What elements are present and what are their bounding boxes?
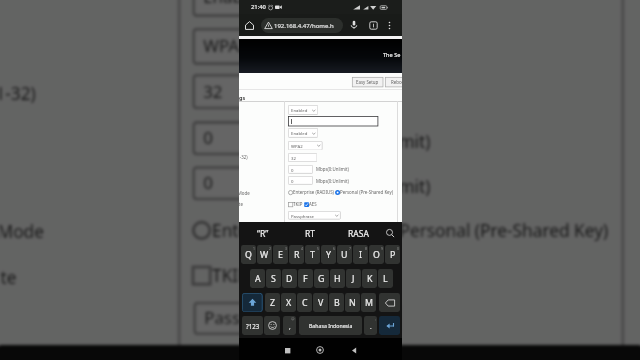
staticText: 0	[291, 178, 294, 184]
button[interactable]: Search	[383, 226, 397, 240]
button[interactable]: 0	[192, 121, 291, 155]
staticText: :	[375, 317, 376, 322]
staticText: Reboot	[391, 79, 402, 85]
button[interactable]: 1	[241, 245, 256, 264]
staticText: C	[302, 297, 308, 309]
staticText: Enterprise (RADIUS)	[293, 189, 334, 195]
button[interactable]: 32	[192, 74, 307, 109]
button[interactable]: Voice search	[347, 18, 361, 32]
button[interactable]: ☺	[283, 316, 296, 335]
button[interactable]: WPA2	[288, 141, 323, 150]
staticText: AES	[276, 263, 306, 287]
button[interactable]: 6	[321, 245, 336, 264]
button[interactable]: ?123	[242, 316, 263, 335]
staticText: uite	[0, 265, 17, 289]
button[interactable]: Backspace	[379, 293, 400, 312]
button[interactable]: Bahasa Indonesia	[299, 316, 362, 335]
button[interactable]: B	[329, 293, 344, 312]
button[interactable]: 0	[192, 166, 291, 201]
staticText: O	[373, 249, 380, 261]
staticText: .	[370, 322, 372, 330]
button[interactable]: RASA	[336, 224, 380, 243]
button[interactable]: M	[361, 293, 376, 312]
button[interactable]: Enabled	[192, 0, 310, 17]
button[interactable]: S	[266, 269, 281, 288]
staticText: “R”	[257, 228, 269, 240]
button[interactable]: RT	[288, 224, 332, 243]
button[interactable]: 4	[289, 245, 304, 264]
button[interactable]: Passphrase	[288, 211, 341, 220]
staticText: N	[349, 297, 356, 309]
button[interactable]: H	[330, 269, 345, 288]
staticText: Enabled	[291, 107, 308, 113]
button[interactable]: Emoji	[264, 316, 280, 335]
button[interactable]: Enabled	[288, 105, 318, 115]
staticText: M	[365, 297, 373, 309]
button[interactable]: 192.168.4.47/home.h	[261, 18, 343, 33]
staticText: RASA	[348, 228, 369, 240]
button[interactable]: 2	[257, 245, 272, 264]
button[interactable]: Home	[313, 343, 327, 357]
button[interactable]: Back	[347, 343, 361, 357]
button[interactable]: F	[298, 269, 313, 288]
button[interactable]: C	[297, 293, 312, 312]
button[interactable]: Z	[265, 293, 280, 312]
button[interactable]: Enabled	[288, 128, 318, 138]
button[interactable]: Recent apps	[280, 343, 294, 357]
button[interactable]: X	[281, 293, 296, 312]
staticText: 0	[291, 167, 294, 173]
button[interactable]: Shift	[242, 293, 263, 312]
staticText: V	[318, 297, 324, 309]
staticText: Enabled	[203, 0, 268, 8]
staticText: (1-32)	[0, 82, 36, 105]
staticText: Passphrase	[204, 307, 295, 329]
staticText: 32	[203, 80, 223, 102]
button[interactable]: 8	[353, 245, 368, 264]
button[interactable]	[288, 116, 378, 126]
staticText: gs	[239, 94, 246, 101]
staticText: ,	[289, 322, 291, 330]
staticText: E	[278, 249, 283, 261]
button[interactable]: Open tabs	[366, 18, 380, 32]
button[interactable]: Reboot	[385, 77, 402, 87]
button[interactable]: Passphrase	[193, 302, 400, 335]
button[interactable]: 7	[337, 245, 352, 264]
staticText: ?123	[246, 322, 260, 330]
button[interactable]: J	[346, 269, 361, 288]
button[interactable]: K	[362, 269, 377, 288]
button[interactable]: 9	[369, 245, 384, 264]
staticText: ☺	[291, 317, 295, 321]
button[interactable]: D	[282, 269, 297, 288]
staticText: RT	[305, 228, 316, 240]
staticText: 9	[381, 246, 383, 251]
button[interactable]: :	[364, 316, 377, 335]
button[interactable]: 0	[288, 176, 313, 185]
button[interactable]: WPA2	[192, 28, 328, 65]
button[interactable]: 3	[273, 245, 288, 264]
button[interactable]: N	[345, 293, 360, 312]
button[interactable]: RT	[190, 351, 363, 360]
staticText: WPA2	[291, 143, 303, 149]
button[interactable]: Home page	[242, 18, 256, 32]
button[interactable]: V	[313, 293, 328, 312]
staticText: 4	[301, 246, 303, 251]
button[interactable]: L	[378, 269, 393, 288]
button[interactable]: A	[250, 269, 265, 288]
button[interactable]: Enter	[379, 316, 400, 335]
staticText: 3	[285, 246, 287, 251]
button[interactable]: 5	[305, 245, 320, 264]
staticText: F	[303, 273, 308, 285]
staticText: 7	[349, 246, 351, 251]
staticText: TKIP	[293, 201, 303, 207]
button[interactable]: “R”	[241, 224, 285, 243]
button[interactable]: More options	[382, 18, 396, 32]
staticText: The Se	[383, 51, 401, 59]
button[interactable]: 0	[385, 245, 400, 264]
staticText: TKIP	[212, 263, 249, 287]
button[interactable]: 32	[288, 153, 317, 162]
button[interactable]: 0	[288, 165, 313, 174]
button[interactable]: G	[314, 269, 329, 288]
button[interactable]: Easy Setup	[352, 77, 383, 87]
